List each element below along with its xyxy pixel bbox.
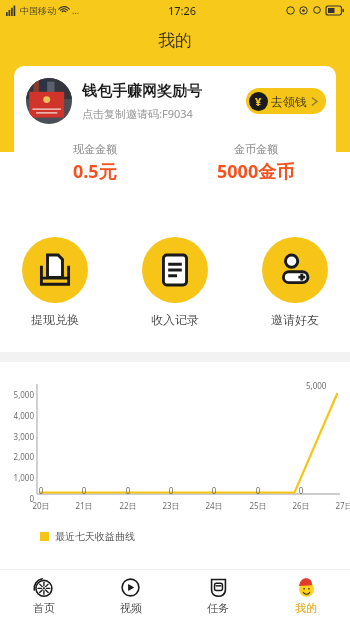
- staticText: 5000金币: [217, 159, 295, 184]
- button[interactable]: 提现兑换: [22, 237, 88, 327]
- staticText: 收入记录: [151, 312, 199, 327]
- staticText: 21日: [69, 500, 99, 511]
- staticText: 26日: [286, 500, 316, 511]
- staticText: 1,000: [2, 472, 34, 483]
- staticText: 首页: [33, 601, 55, 615]
- button[interactable]: 视频: [87, 570, 174, 622]
- button[interactable]: 收入记录: [142, 237, 208, 327]
- staticText: 现金金额: [73, 142, 117, 156]
- staticText: 0: [122, 485, 134, 496]
- button[interactable]: 现金金额: [14, 142, 175, 184]
- staticText: 25日: [243, 500, 273, 511]
- staticText: 5,000: [2, 389, 34, 400]
- staticText: 视频: [120, 601, 142, 615]
- staticText: 4,000: [2, 410, 34, 421]
- staticText: ¥: [255, 94, 262, 109]
- staticText: 0: [78, 485, 90, 496]
- staticText: 提现兑换: [31, 312, 79, 327]
- staticText: 金币金额: [234, 142, 278, 156]
- staticText: 0.5元: [73, 159, 117, 184]
- staticText: 中国移动: [20, 5, 56, 16]
- staticText: 27日: [329, 500, 350, 511]
- staticText: 0: [165, 485, 177, 496]
- staticText: 3,000: [2, 431, 34, 442]
- button[interactable]: 首页: [0, 570, 87, 622]
- staticText: 22日: [113, 500, 143, 511]
- staticText: 钱包手赚网奖励号: [82, 82, 202, 101]
- staticText: 最近七天收益曲线: [55, 530, 135, 543]
- button[interactable]: ¥: [246, 88, 326, 114]
- button[interactable]: 邀请好友: [262, 237, 328, 327]
- staticText: 2,000: [2, 451, 34, 462]
- button[interactable]: 任务: [174, 570, 262, 622]
- staticText: 0: [208, 485, 220, 496]
- staticText: 17:26: [168, 3, 197, 18]
- staticText: 去领钱: [271, 94, 307, 109]
- staticText: 5,000: [306, 380, 327, 391]
- staticText: 0: [2, 493, 34, 504]
- button[interactable]: 金币金额: [175, 142, 336, 184]
- staticText: 24日: [199, 500, 229, 511]
- staticText: 20日: [26, 500, 56, 511]
- button[interactable]: 我的: [262, 570, 350, 622]
- staticText: 任务: [207, 601, 229, 615]
- staticText: 0: [35, 485, 47, 496]
- staticText: 我的: [295, 601, 317, 615]
- staticText: 0: [252, 485, 264, 496]
- staticText: 23日: [156, 500, 186, 511]
- button[interactable]: Avatar: [26, 78, 72, 124]
- staticText: 邀请好友: [271, 312, 319, 327]
- staticText: …: [72, 4, 80, 16]
- staticText: 我的: [158, 30, 192, 51]
- button[interactable]: 点击复制邀请码:F9034: [82, 106, 193, 121]
- staticText: 0: [295, 485, 307, 496]
